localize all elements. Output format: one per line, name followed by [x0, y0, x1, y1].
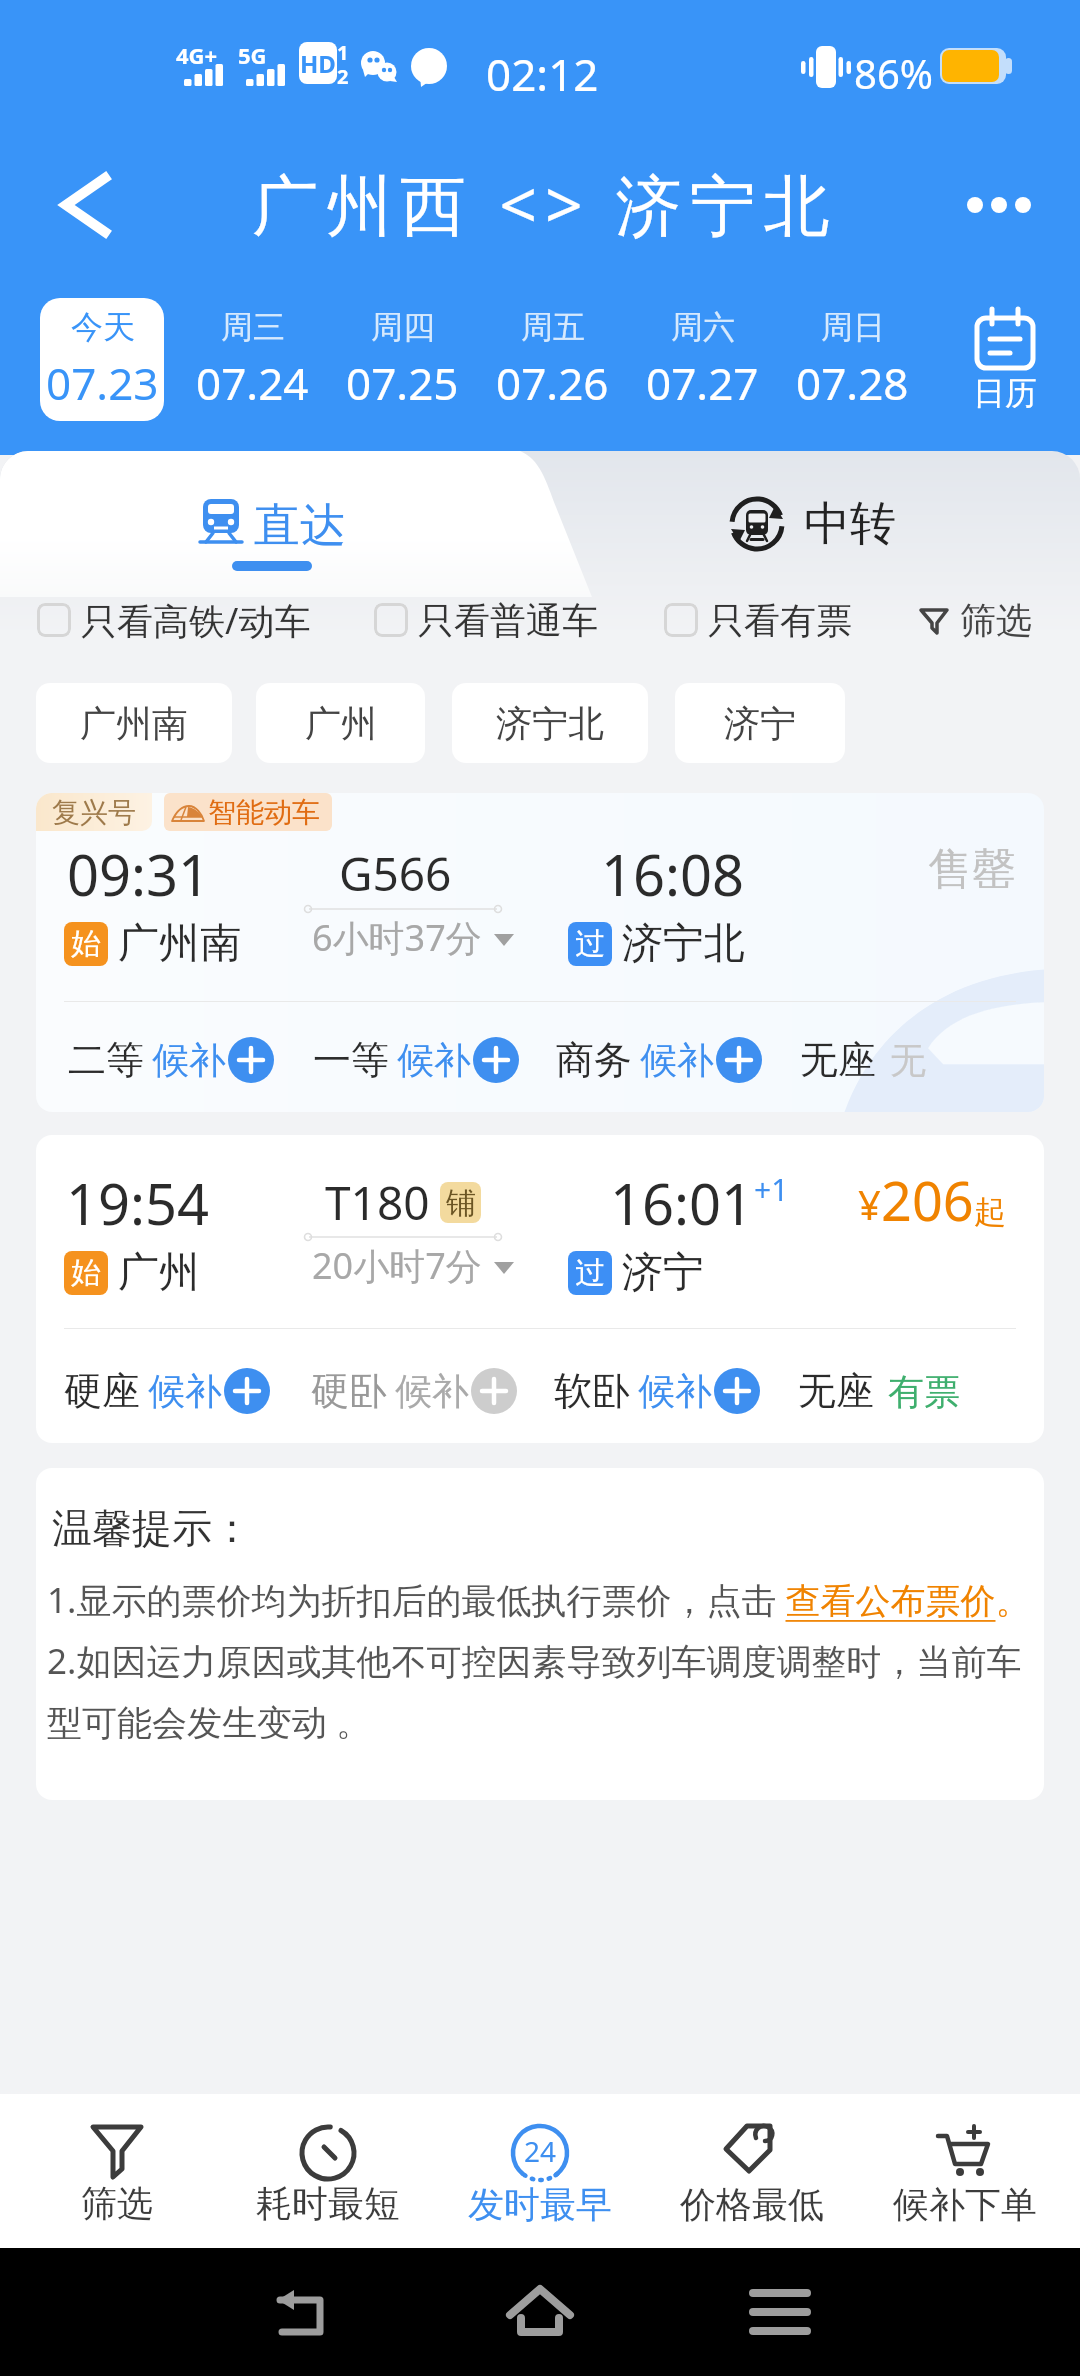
staticText: 日历: [973, 373, 1037, 413]
button[interactable]: 周五: [490, 298, 614, 421]
staticText: 候补: [152, 1037, 226, 1084]
staticText: 济宁北: [496, 701, 604, 746]
staticText: 19:54: [66, 1165, 210, 1241]
staticText: 07.26: [496, 353, 609, 413]
staticText: 07.28: [796, 353, 909, 413]
staticText: 候补: [640, 1037, 714, 1084]
staticText: 只看普通车: [418, 598, 598, 643]
button[interactable]: 济宁: [675, 683, 845, 763]
staticText: 筛选: [81, 2181, 153, 2226]
staticText: 一等: [313, 1036, 389, 1084]
button[interactable]: 二等: [68, 1036, 274, 1084]
staticText: 07.24: [196, 353, 309, 413]
button[interactable]: 直达: [0, 451, 640, 597]
button[interactable]: 周日: [790, 298, 914, 421]
button[interactable]: Back: [40, 160, 130, 250]
button[interactable]: 硬卧: [311, 1367, 517, 1415]
staticText: 硬座: [64, 1367, 140, 1415]
button[interactable]: 周四: [340, 298, 464, 421]
staticText: 筛选: [960, 598, 1032, 643]
button[interactable]: 济宁北: [452, 683, 648, 763]
staticText: 温馨提示：: [52, 1503, 252, 1553]
staticText: 广州南: [118, 918, 241, 970]
staticText: 耗时最短: [256, 2181, 400, 2226]
button[interactable]: 只看普通车: [374, 592, 598, 648]
button[interactable]: 只看高铁/动车: [37, 592, 311, 648]
staticText: 硬卧: [311, 1367, 387, 1415]
staticText: 07.27: [646, 353, 759, 413]
staticText: 206: [881, 1163, 974, 1237]
button[interactable]: 复兴号: [36, 793, 1044, 1112]
staticText: 86%: [854, 46, 933, 100]
staticText: 周日: [821, 307, 885, 347]
staticText: 始: [71, 925, 101, 963]
staticText: 济宁北: [622, 918, 745, 970]
staticText: G566: [339, 842, 452, 905]
button[interactable]: 商务: [556, 1036, 762, 1084]
staticText: 候补: [148, 1368, 222, 1415]
staticText: 起: [974, 1192, 1006, 1232]
button[interactable]: 筛选: [916, 592, 1032, 648]
button[interactable]: Home: [490, 2262, 590, 2362]
staticText: 过: [575, 925, 605, 963]
staticText: 广州: [118, 1247, 200, 1299]
staticText: 二等: [68, 1036, 144, 1084]
staticText: 4G+: [176, 40, 218, 70]
staticText: 1: [337, 39, 349, 66]
staticText: 周六: [671, 307, 735, 347]
staticText: 复兴号: [52, 795, 136, 830]
staticText: 24: [524, 2132, 557, 2170]
staticText: 售罄: [928, 842, 1016, 897]
staticText: +1: [754, 1169, 789, 1210]
staticText: 16:08: [601, 836, 745, 912]
button[interactable]: 硬座: [64, 1367, 270, 1415]
staticText: 候补: [397, 1037, 471, 1084]
button[interactable]: Recent apps: [730, 2262, 830, 2362]
button[interactable]: 19:54: [36, 1135, 1044, 1443]
staticText: T180: [325, 1171, 430, 1234]
staticText: 无座: [800, 1036, 876, 1084]
button[interactable]: 一等: [313, 1036, 519, 1084]
button[interactable]: 广州南: [36, 683, 232, 763]
staticText: 有票: [888, 1369, 960, 1414]
button[interactable]: 耗时最短: [228, 2098, 428, 2252]
staticText: 候补下单: [893, 2182, 1037, 2227]
staticText: 2: [337, 63, 349, 90]
staticText: 周五: [521, 307, 585, 347]
staticText: 商务: [556, 1036, 632, 1084]
staticText: 发时最早: [468, 2182, 612, 2227]
staticText: 济宁: [622, 1247, 704, 1299]
staticText: 1.显示的票价均为折扣后的最低执行票价，点击 查看公布票价。 2.如因运力原因或…: [47, 1576, 1042, 1746]
button[interactable]: 软卧: [554, 1367, 760, 1415]
staticText: 20小时7分: [312, 1241, 482, 1290]
button[interactable]: 周三: [190, 298, 314, 421]
staticText: 济宁: [724, 701, 796, 746]
staticText: 广州: [305, 701, 377, 746]
staticText: 价格最低: [680, 2182, 824, 2227]
staticText: 07.23: [46, 353, 159, 413]
staticText: 02:12: [486, 44, 599, 104]
staticText: 直达: [254, 497, 346, 555]
staticText: 候补: [395, 1368, 469, 1415]
button[interactable]: 只看有票: [664, 592, 852, 648]
button[interactable]: 24: [440, 2098, 640, 2252]
staticText: 广州南: [80, 701, 188, 746]
button[interactable]: 候补下单: [865, 2098, 1065, 2252]
button[interactable]: 今天: [40, 298, 164, 421]
button[interactable]: 筛选: [17, 2098, 217, 2252]
button[interactable]: 中转: [728, 495, 896, 553]
staticText: HD: [300, 47, 336, 80]
staticText: 无座: [798, 1367, 874, 1415]
button[interactable]: 价格最低: [652, 2098, 852, 2252]
button[interactable]: Calendar: [940, 298, 1070, 421]
staticText: 周四: [371, 307, 435, 347]
button[interactable]: 周六: [640, 298, 764, 421]
staticText: 候补: [638, 1368, 712, 1415]
staticText: 中转: [804, 495, 896, 553]
button[interactable]: 广州: [256, 683, 425, 763]
staticText: 过: [575, 1254, 605, 1292]
staticText: 无: [890, 1038, 926, 1083]
staticText: 智能动车: [208, 795, 320, 830]
button[interactable]: Back: [250, 2262, 350, 2362]
button[interactable]: More options: [954, 160, 1044, 250]
